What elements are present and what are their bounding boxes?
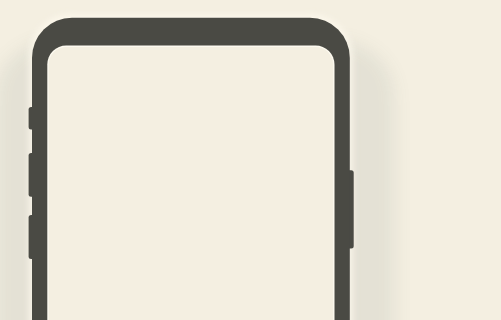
button[interactable]: Volume down	[26, 151, 36, 199]
button[interactable]: Assistant key	[26, 213, 36, 261]
button[interactable]: Power button	[341, 170, 354, 249]
button[interactable]: Volume up	[26, 105, 36, 132]
button[interactable]: Phone screen	[47, 46, 334, 320]
